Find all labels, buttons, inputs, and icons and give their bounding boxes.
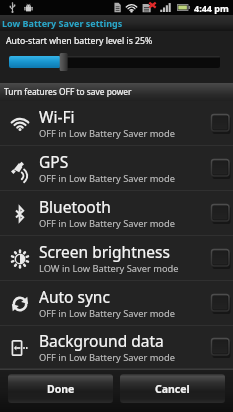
staticText: OFF in Low Battery Saver mode (39, 172, 175, 185)
button[interactable]: GPS (0, 146, 233, 191)
staticText: GPS (39, 151, 69, 172)
staticText: Auto-start when battery level is 25% (6, 35, 153, 47)
staticText: Low Battery Saver settings (2, 17, 123, 29)
staticText: Background data (39, 330, 164, 351)
button[interactable]: Done (8, 374, 113, 403)
button[interactable]: Bluetooth (0, 191, 233, 236)
staticText: OFF in Low Battery Saver mode (39, 307, 175, 320)
button[interactable]: Background data (0, 326, 233, 369)
staticText: Cancel (155, 382, 190, 396)
staticText: Wi-Fi (39, 106, 75, 127)
staticText: OFF in Low Battery Saver mode (39, 351, 175, 364)
button[interactable]: Wi-Fi (0, 101, 233, 146)
staticText: LOW in Low Battery Saver mode (39, 262, 179, 275)
staticText: OFF in Low Battery Saver mode (39, 127, 175, 140)
staticText: Bluetooth (39, 196, 111, 217)
button[interactable]: Auto sync (0, 281, 233, 326)
button[interactable]: Screen brightness (0, 236, 233, 281)
staticText: Screen brightness (39, 241, 170, 262)
button[interactable]: Cancel (120, 374, 225, 403)
staticText: Auto sync (39, 286, 110, 307)
staticText: Done (47, 382, 75, 396)
staticText: OFF in Low Battery Saver mode (39, 217, 175, 230)
staticText: 4:44 pm (194, 2, 229, 14)
staticText: Turn features OFF to save power (4, 86, 132, 97)
